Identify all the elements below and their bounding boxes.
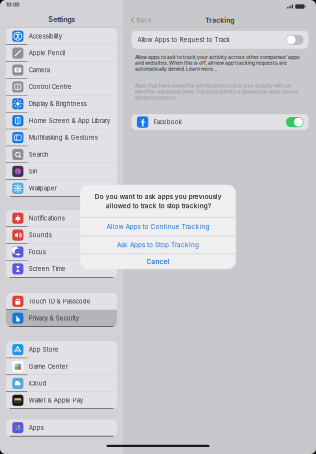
button[interactable]: Back [128, 14, 154, 27]
button[interactable]: Control Centre [6, 79, 117, 96]
staticText: Allow Apps to Request to Track [137, 36, 229, 43]
staticText: Wallet & Apple Pay [29, 397, 83, 404]
staticText: Camera [29, 66, 50, 74]
staticText: App Store [29, 346, 59, 353]
staticText: Accessibility [29, 32, 62, 40]
staticText: Back [136, 16, 151, 24]
button[interactable]: Search [6, 146, 117, 163]
staticText: Notifications [29, 214, 65, 222]
staticText: Tracking [205, 16, 234, 24]
button[interactable]: Ask Apps to Stop Tracking [80, 236, 236, 254]
button[interactable]: Multitasking & Gestures [6, 129, 117, 146]
staticText: Apps [29, 424, 44, 431]
staticText: Do you want to ask apps you previously a… [94, 193, 221, 210]
staticText: Siri [29, 168, 37, 175]
button[interactable]: Screen Time [6, 261, 117, 278]
button[interactable]: Apple Pencil [6, 45, 117, 62]
button[interactable]: Touch ID & Passcode [6, 293, 117, 310]
staticText: Home Screen & App Library [29, 117, 110, 124]
staticText: Settings [48, 15, 75, 24]
staticText: Cancel [146, 258, 169, 265]
staticText: Touch ID & Passcode [29, 298, 91, 305]
button[interactable]: Sounds [6, 227, 117, 244]
staticText: Sounds [29, 231, 52, 239]
staticText: 10:00 [6, 1, 19, 8]
button[interactable]: Toggle on [286, 117, 303, 127]
staticText: Apps that have asked for permission to t… [135, 83, 298, 101]
staticText: Ask Apps to Stop Tracking [117, 241, 199, 249]
staticText: Screen Time [29, 265, 66, 272]
button[interactable]: Camera [6, 62, 117, 79]
button[interactable]: Accessibility [6, 28, 117, 45]
staticText: Privacy & Security [29, 314, 79, 322]
staticText: Search [29, 151, 49, 158]
button[interactable]: Cancel [80, 254, 236, 269]
button[interactable]: Focus [6, 244, 117, 261]
button[interactable]: Toggle off [286, 35, 303, 45]
button[interactable]: Wallet & Apple Pay [6, 392, 117, 409]
staticText: Allow apps to ask to track your activity… [135, 54, 300, 72]
button[interactable]: Allow Apps to Continue Tracking [80, 218, 236, 236]
staticText: iCloud [29, 380, 47, 387]
button[interactable]: iCloud [6, 375, 117, 392]
staticText: Apple Pencil [29, 49, 65, 57]
button[interactable]: Privacy & Security [6, 310, 117, 327]
staticText: Allow Apps to Continue Tracking [106, 223, 209, 230]
staticText: Game Center [29, 363, 68, 370]
staticText: Display & Brightness [29, 100, 87, 107]
staticText: Wallpaper [29, 185, 57, 192]
button[interactable]: Notifications [6, 210, 117, 227]
button[interactable]: Display & Brightness [6, 96, 117, 112]
button[interactable]: App Store [6, 341, 117, 358]
staticText: Focus [29, 248, 46, 256]
button[interactable]: Siri [6, 163, 117, 180]
staticText: Facebook [154, 118, 182, 126]
button[interactable]: Game Center [6, 358, 117, 375]
staticText: Control Centre [29, 83, 72, 90]
button[interactable]: Wallpaper [6, 180, 117, 197]
button[interactable]: Apps [6, 419, 117, 436]
button[interactable]: Home Screen & App Library [6, 112, 117, 129]
staticText: Multitasking & Gestures [29, 134, 98, 141]
